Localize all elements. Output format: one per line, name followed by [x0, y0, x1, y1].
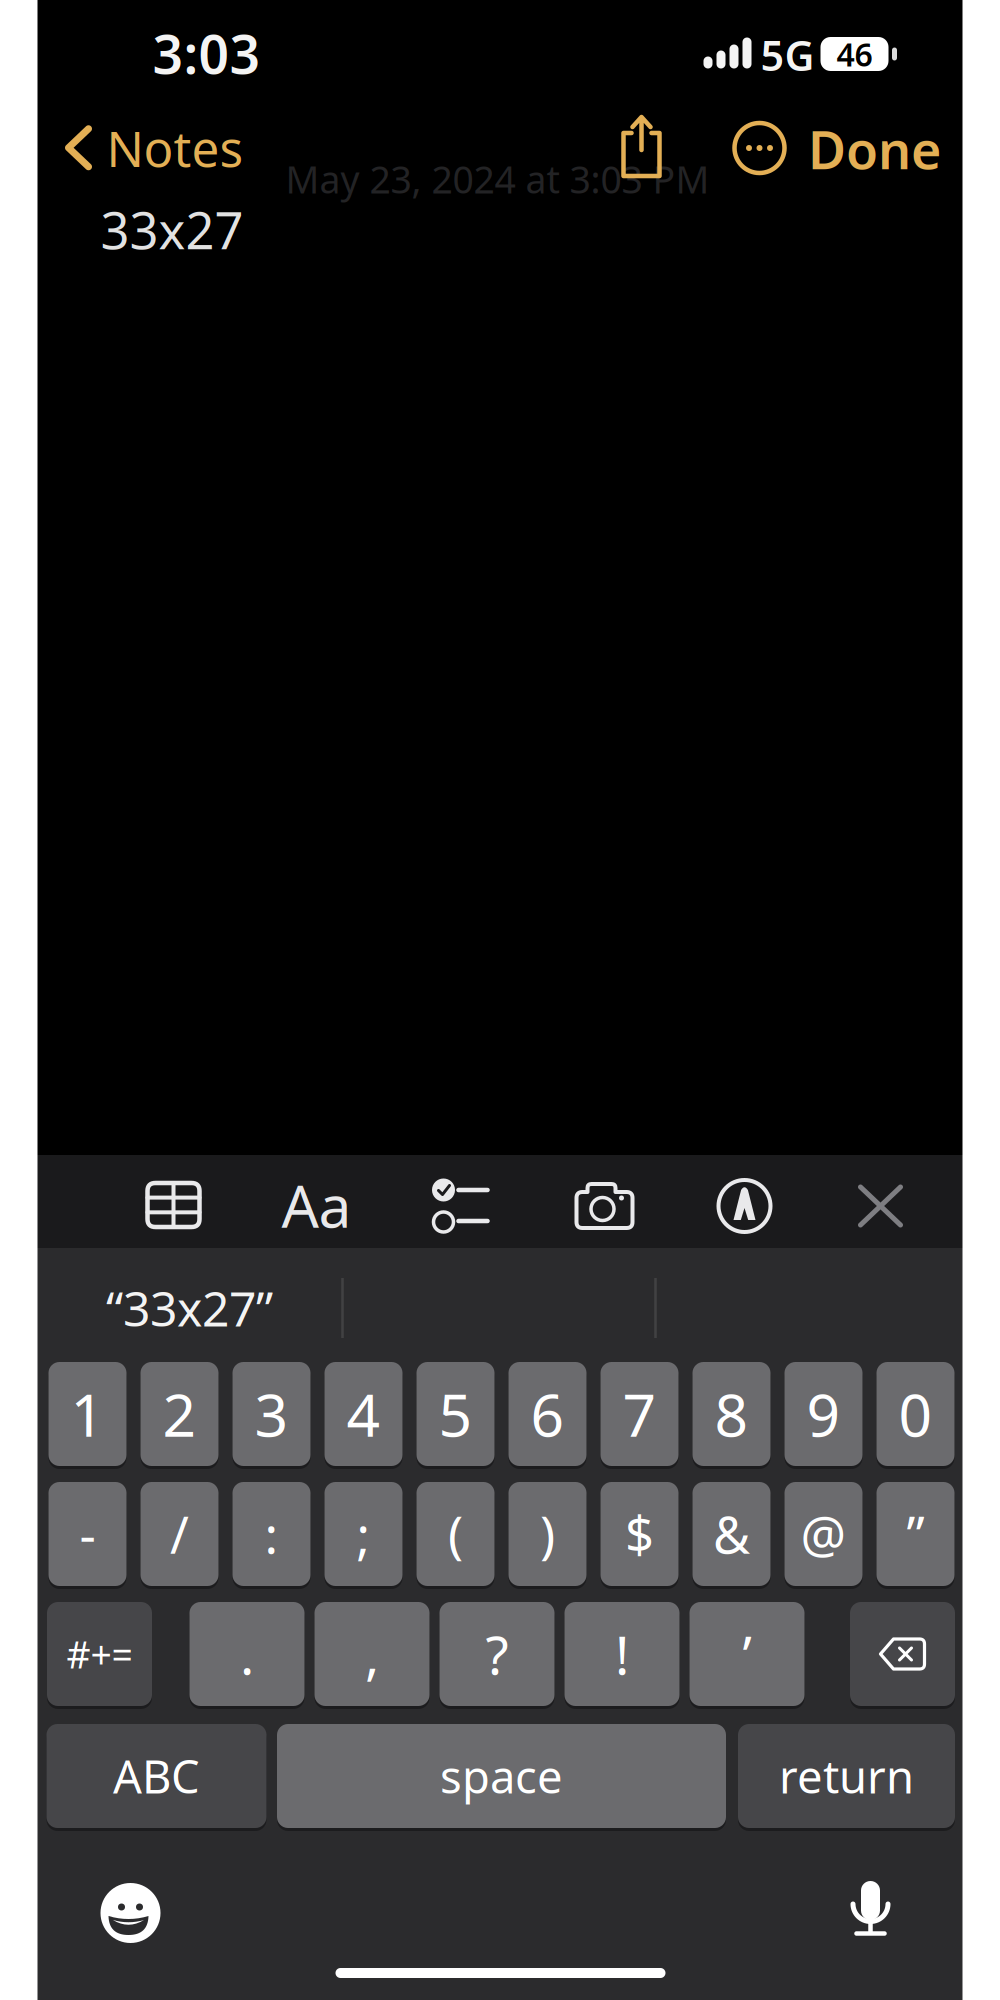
button[interactable]: return	[738, 1722, 955, 1829]
staticText: 4	[346, 1375, 380, 1453]
button[interactable]: Markup	[714, 1176, 774, 1236]
button[interactable]: Done	[808, 114, 941, 184]
staticText: 9	[806, 1375, 840, 1453]
staticText: 7	[622, 1375, 656, 1453]
button[interactable]: 0	[876, 1360, 954, 1467]
staticText: ;	[356, 1500, 370, 1568]
staticText: return	[779, 1746, 914, 1806]
staticText: !	[615, 1619, 629, 1689]
button[interactable]: &	[692, 1480, 770, 1587]
button[interactable]: Share	[613, 114, 669, 180]
button[interactable]: 7	[600, 1360, 678, 1467]
staticText: “33x27”	[106, 1276, 273, 1340]
staticText: :	[264, 1500, 278, 1568]
button[interactable]: 1	[48, 1360, 126, 1467]
staticText: Notes	[106, 115, 243, 180]
button[interactable]: 8	[692, 1360, 770, 1467]
button[interactable]: $	[600, 1480, 678, 1587]
button[interactable]: ?	[439, 1600, 554, 1707]
staticText: #+=	[66, 1629, 132, 1679]
button[interactable]: Dismiss keyboard	[857, 1183, 903, 1229]
button[interactable]: 3	[232, 1360, 310, 1467]
staticText: 33x27	[100, 196, 243, 263]
button[interactable]: (	[416, 1480, 494, 1587]
button[interactable]: /	[140, 1480, 218, 1587]
staticText: ,	[365, 1619, 379, 1689]
button[interactable]: Dictation	[848, 1873, 892, 1939]
staticText: 6	[530, 1375, 564, 1453]
button[interactable]: !	[564, 1600, 679, 1707]
staticText: /	[170, 1500, 189, 1568]
staticText: ”	[906, 1500, 924, 1568]
button[interactable]: 5	[416, 1360, 494, 1467]
button[interactable]: .	[189, 1600, 304, 1707]
button[interactable]: 6	[508, 1360, 586, 1467]
button[interactable]: ABC	[46, 1722, 266, 1829]
staticText: space	[440, 1746, 563, 1806]
staticText: Done	[808, 114, 941, 184]
button[interactable]: Insert photo	[572, 1178, 636, 1234]
staticText: 5	[438, 1375, 472, 1453]
button[interactable]: 9	[784, 1360, 862, 1467]
button[interactable]: 4	[324, 1360, 402, 1467]
staticText: 0	[898, 1375, 932, 1453]
button[interactable]: ”	[876, 1480, 954, 1587]
staticText: ’	[742, 1619, 751, 1689]
staticText: 8	[714, 1375, 748, 1453]
staticText: $	[625, 1500, 654, 1568]
staticText: .	[240, 1619, 254, 1689]
staticText: May 23, 2024 at 3:03 PM	[285, 154, 709, 204]
button[interactable]: ’	[689, 1600, 804, 1707]
staticText: 3	[254, 1375, 288, 1453]
staticText: ?	[485, 1619, 508, 1689]
staticText: 46	[836, 33, 872, 75]
staticText: @	[800, 1500, 846, 1568]
button[interactable]: #+=	[47, 1600, 152, 1707]
button[interactable]: 2	[140, 1360, 218, 1467]
staticText: -	[79, 1500, 95, 1568]
button[interactable]: Format	[281, 1166, 351, 1244]
staticText: Aa	[281, 1166, 351, 1244]
button[interactable]: )	[508, 1480, 586, 1587]
staticText: ABC	[113, 1746, 200, 1806]
button[interactable]: Insert table	[141, 1177, 205, 1233]
staticText: &	[713, 1500, 750, 1568]
button[interactable]: Delete	[850, 1600, 955, 1707]
staticText: 1	[70, 1375, 104, 1453]
button[interactable]: @	[784, 1480, 862, 1587]
button[interactable]: More	[731, 120, 787, 176]
button[interactable]: :	[232, 1480, 310, 1587]
staticText: (	[448, 1500, 463, 1568]
staticText: 2	[162, 1375, 196, 1453]
staticText: 3:03	[152, 18, 260, 89]
button[interactable]: ;	[324, 1480, 402, 1587]
button[interactable]: Checklist	[429, 1177, 493, 1233]
staticText: 5G	[760, 28, 814, 82]
button[interactable]: space	[277, 1722, 726, 1829]
button[interactable]: “33x27”	[43, 1262, 335, 1354]
staticText: )	[540, 1500, 555, 1568]
button[interactable]: ,	[314, 1600, 429, 1707]
button[interactable]: Notes	[63, 115, 243, 180]
button[interactable]: Emoji	[99, 1882, 161, 1944]
button[interactable]: -	[48, 1480, 126, 1587]
